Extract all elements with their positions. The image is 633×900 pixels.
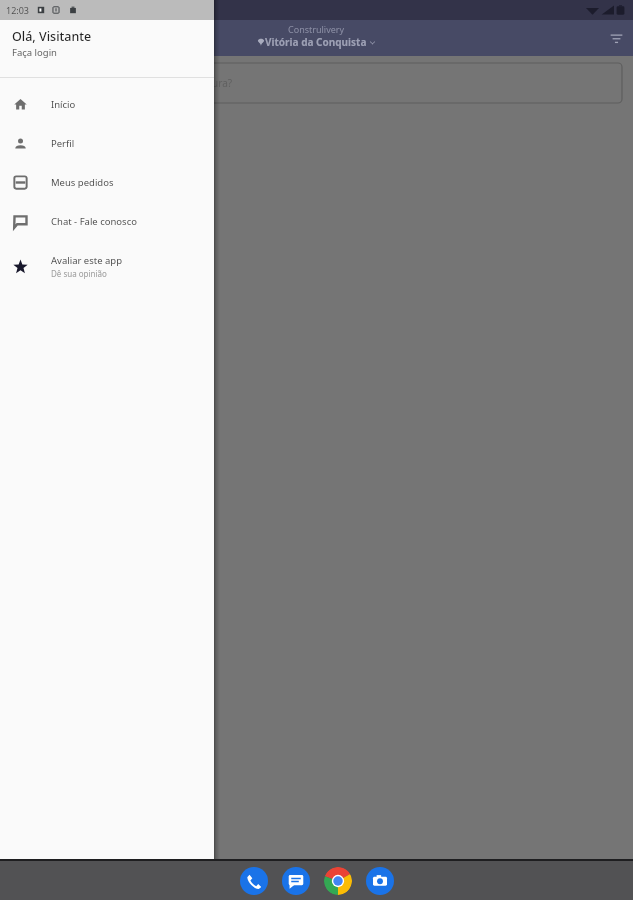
staticText: Dê sua opinião <box>51 268 107 279</box>
button[interactable]: Mensagens <box>282 867 310 895</box>
staticText: Perfil <box>51 137 75 150</box>
staticText: Início <box>51 98 76 111</box>
button[interactable]: Meus pedidos <box>0 163 214 202</box>
button[interactable]: Avaliar este app <box>0 241 214 291</box>
staticText: Construlivery <box>288 23 345 35</box>
button[interactable]: Chrome <box>324 867 352 895</box>
staticText: Avaliar este app <box>51 254 123 267</box>
staticText: Faça login <box>12 46 57 59</box>
staticText: Olá, Visitante <box>12 28 92 45</box>
button[interactable]: Telefone <box>240 867 268 895</box>
button[interactable]: O que você procura? <box>11 63 622 103</box>
button[interactable]: Filtrar <box>604 26 628 50</box>
staticText: Chat - Fale conosco <box>51 215 137 228</box>
staticText: 12:03 <box>6 4 30 16</box>
button[interactable]: Câmera <box>366 867 394 895</box>
button[interactable]: Chat - Fale conosco <box>0 202 214 241</box>
staticText: O que você procura? <box>136 76 233 90</box>
button[interactable]: Perfil <box>0 124 214 163</box>
staticText: Vitória da Conquista <box>265 35 367 49</box>
button[interactable]: Início <box>0 85 214 124</box>
staticText: Meus pedidos <box>51 176 114 189</box>
